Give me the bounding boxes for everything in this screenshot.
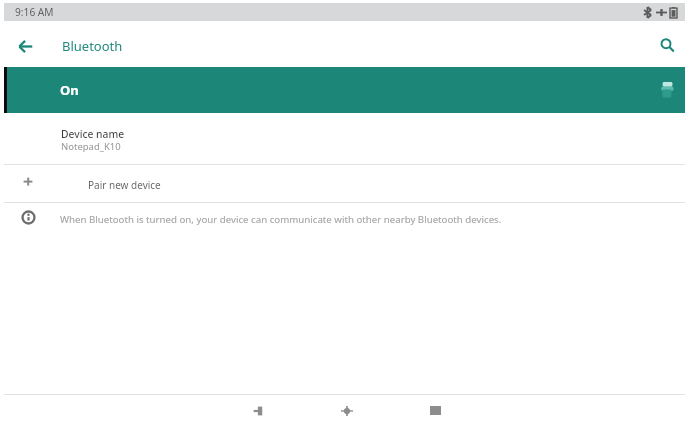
button[interactable]: Home [332, 396, 362, 424]
button[interactable]: Search [653, 31, 681, 59]
button[interactable]: Back [11, 32, 39, 60]
staticText: When Bluetooth is turned on, your device… [60, 213, 502, 226]
button[interactable]: Pair new device [0, 165, 693, 202]
staticText: Notepad_K10 [61, 140, 121, 153]
staticText: On [60, 81, 79, 99]
button[interactable]: Recent apps [420, 396, 450, 424]
button[interactable]: On [4, 67, 685, 113]
staticText: 9:16 AM [15, 5, 54, 19]
staticText: Pair new device [88, 178, 161, 192]
button[interactable]: Device name [0, 113, 693, 164]
staticText: Bluetooth [62, 37, 123, 55]
button[interactable]: Back [243, 396, 273, 424]
staticText: Device name [61, 127, 125, 141]
